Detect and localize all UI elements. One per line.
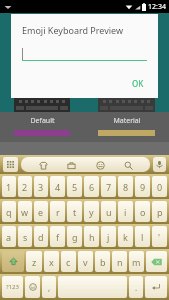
button[interactable]: Enter [145, 276, 167, 298]
staticText: l [141, 231, 144, 243]
staticText: u [106, 206, 112, 218]
staticText: a [6, 231, 12, 243]
staticText: Default [30, 116, 55, 126]
staticText: 7 [106, 181, 112, 193]
button[interactable]: w [18, 201, 32, 222]
button[interactable]: Keyboard themes [3, 157, 18, 172]
button[interactable]: a [2, 226, 16, 247]
button[interactable]: k [118, 226, 133, 247]
staticText: t [73, 206, 77, 218]
staticText: 5 [72, 181, 78, 193]
button[interactable]: p [152, 201, 167, 222]
button[interactable]: ?123 [2, 276, 23, 298]
button[interactable]: Backspace [146, 251, 167, 272]
button[interactable]: Material [84, 98, 169, 136]
staticText: Material [113, 116, 141, 126]
staticText: 2 [22, 181, 28, 193]
staticText: b [100, 256, 106, 268]
staticText: z [32, 256, 37, 268]
button[interactable]: d [34, 226, 48, 247]
staticText: c [66, 256, 71, 268]
button[interactable]: 6 [84, 176, 99, 197]
button[interactable]: Store [64, 158, 78, 172]
staticText: x [49, 256, 54, 268]
staticText: 3 [38, 181, 44, 193]
staticText: d [38, 231, 44, 243]
button[interactable]: m [129, 251, 144, 272]
button[interactable]: c [61, 251, 76, 272]
staticText: 12:34 [148, 2, 166, 12]
button[interactable]: 2 [18, 176, 32, 197]
button[interactable] [58, 276, 127, 298]
button[interactable]: 9 [135, 176, 150, 197]
button[interactable]: o [135, 201, 150, 222]
button[interactable]: e [34, 201, 48, 222]
button[interactable]: b [95, 251, 110, 272]
button[interactable]: . [129, 276, 143, 298]
button[interactable]: 0 [152, 176, 167, 197]
button[interactable]: u [101, 201, 116, 222]
button[interactable]: z [26, 251, 42, 272]
button[interactable]: f [50, 226, 65, 247]
staticText: y [89, 206, 94, 218]
button[interactable]: OK [118, 75, 158, 92]
button[interactable]: Search [121, 158, 135, 172]
button[interactable]: 8 [118, 176, 133, 197]
staticText: ?123 [6, 283, 19, 291]
staticText: 6 [89, 181, 95, 193]
staticText: , [48, 282, 51, 293]
button[interactable]: h [84, 226, 99, 247]
button[interactable]: 3 [34, 176, 48, 197]
button[interactable]: y [84, 201, 99, 222]
button[interactable]: ' [152, 226, 167, 247]
button[interactable]: 1 [2, 176, 16, 197]
staticText: n [117, 256, 123, 268]
staticText: f [56, 231, 60, 243]
staticText [91, 281, 94, 293]
staticText: o [140, 206, 146, 218]
staticText: h [89, 231, 95, 243]
staticText: j [107, 231, 110, 243]
button[interactable]: Shift [2, 251, 24, 272]
staticText: i [124, 206, 127, 218]
button[interactable]: n [112, 251, 127, 272]
button[interactable]: i [118, 201, 133, 222]
button[interactable]: Emoji [93, 158, 107, 172]
button[interactable]: g [67, 226, 82, 247]
staticText: 0 [157, 181, 163, 193]
button[interactable]: 4 [50, 176, 65, 197]
button[interactable]: 7 [101, 176, 116, 197]
staticText: m [132, 256, 141, 268]
staticText: ' [158, 231, 161, 243]
button[interactable]: Voice input [153, 157, 166, 172]
staticText: 9 [140, 181, 146, 193]
staticText: v [83, 256, 88, 268]
button[interactable]: Emoji [25, 276, 40, 298]
button[interactable]: r [50, 201, 65, 222]
staticText: . [135, 282, 138, 293]
staticText: 8 [123, 181, 129, 193]
staticText: w [21, 206, 29, 218]
staticText: p [157, 206, 163, 218]
staticText: r [56, 206, 60, 218]
button[interactable]: t [67, 201, 82, 222]
staticText: Emoji Keyboard Preview [22, 24, 124, 36]
button[interactable]: , [42, 276, 56, 298]
button[interactable]: Stickers [36, 158, 50, 172]
button[interactable]: j [101, 226, 116, 247]
staticText: s [23, 231, 28, 243]
button[interactable]: l [135, 226, 150, 247]
staticText: OK [132, 78, 144, 89]
button[interactable]: q [2, 201, 16, 222]
button[interactable]: v [78, 251, 93, 272]
button[interactable]: x [44, 251, 59, 272]
button[interactable]: 5 [67, 176, 82, 197]
staticText: 4 [55, 181, 61, 193]
button[interactable]: s [18, 226, 32, 247]
staticText: q [6, 206, 12, 218]
staticText: 1 [6, 181, 12, 193]
staticText: k [123, 231, 128, 243]
staticText: g [72, 231, 78, 243]
staticText: e [38, 206, 44, 218]
button[interactable]: Default [0, 98, 84, 136]
